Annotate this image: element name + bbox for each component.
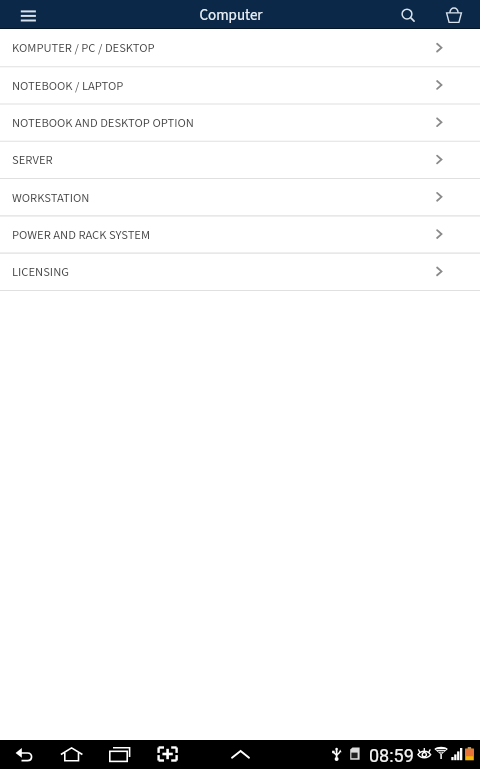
button[interactable]: NOTEBOOK AND DESKTOP OPTION: [0, 104, 480, 141]
staticText: Computer: [199, 5, 263, 26]
staticText: SERVER: [12, 151, 53, 169]
staticText: KOMPUTER / PC / DESKTOP: [12, 39, 155, 57]
button[interactable]: Recent apps: [96, 741, 140, 769]
button[interactable]: Home: [50, 741, 94, 769]
button[interactable]: Open navigation menu: [0, 1, 48, 29]
button[interactable]: NOTEBOOK / LAPTOP: [0, 67, 480, 104]
staticText: NOTEBOOK / LAPTOP: [12, 77, 124, 95]
staticText: 08:59: [369, 745, 414, 766]
button[interactable]: Screenshot: [145, 741, 189, 769]
button[interactable]: Back: [2, 741, 46, 769]
button[interactable]: Expand status bar: [218, 741, 262, 769]
button[interactable]: SERVER: [0, 141, 480, 178]
staticText: WORKSTATION: [12, 189, 90, 207]
button[interactable]: Shopping basket: [437, 1, 471, 29]
staticText: NOTEBOOK AND DESKTOP OPTION: [12, 114, 194, 132]
staticText: LICENSING: [12, 263, 69, 281]
button[interactable]: POWER AND RACK SYSTEM: [0, 216, 480, 253]
button[interactable]: LICENSING: [0, 253, 480, 290]
button[interactable]: WORKSTATION: [0, 179, 480, 216]
button[interactable]: KOMPUTER / PC / DESKTOP: [0, 29, 480, 66]
button[interactable]: Search: [390, 1, 424, 29]
staticText: POWER AND RACK SYSTEM: [12, 226, 151, 244]
